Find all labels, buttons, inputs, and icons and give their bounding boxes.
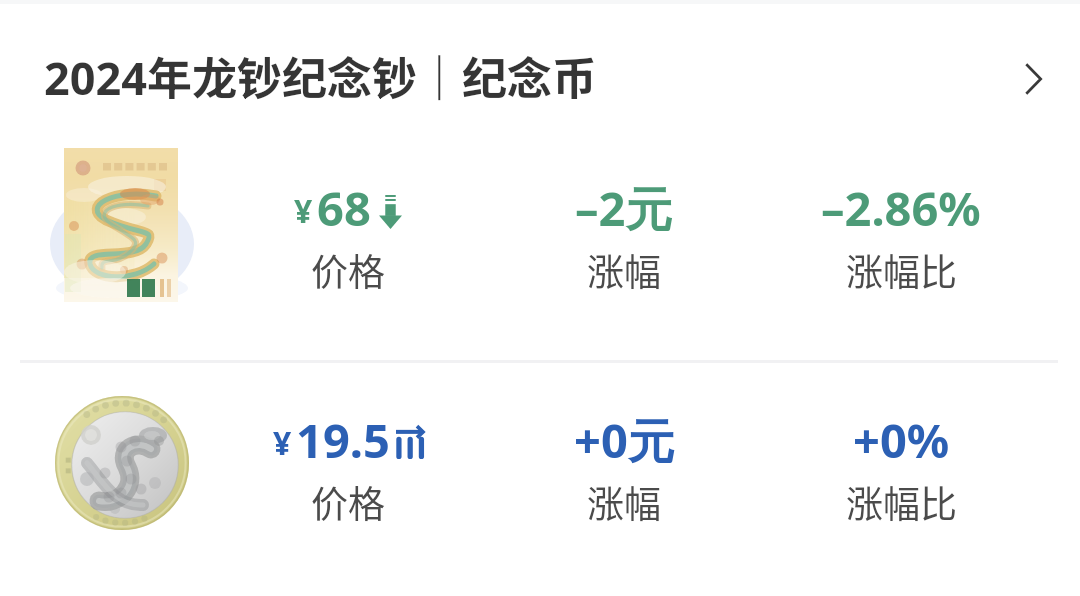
staticText: 涨幅比: [846, 475, 957, 529]
button[interactable]: Open details: [995, 41, 1071, 117]
staticText: 19.5: [296, 408, 390, 472]
staticText: 2024年龙钞纪念钞｜纪念币: [44, 43, 597, 108]
button[interactable]: ¥: [0, 132, 1080, 361]
staticText: 价格: [311, 243, 385, 297]
staticText: –2.86%: [821, 176, 981, 240]
button[interactable]: ¥: [0, 363, 1080, 596]
staticText: +0元: [574, 408, 675, 472]
staticText: +0%: [853, 408, 950, 472]
button[interactable]: 2024年龙钞纪念钞｜纪念币: [0, 0, 1080, 132]
staticText: –2元: [575, 176, 673, 240]
staticText: 68: [317, 176, 371, 240]
staticText: ¥: [294, 189, 313, 233]
staticText: 涨幅: [587, 475, 661, 529]
staticText: ¥: [273, 421, 292, 465]
staticText: 涨幅: [587, 243, 661, 297]
staticText: 涨幅比: [846, 243, 957, 297]
staticText: 价格: [311, 475, 385, 529]
